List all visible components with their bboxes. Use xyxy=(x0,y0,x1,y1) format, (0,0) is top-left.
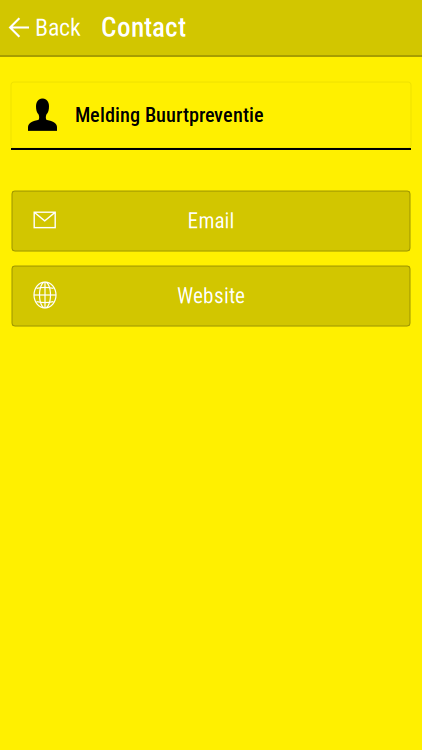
button[interactable]: Back xyxy=(0,0,81,55)
staticText: Website xyxy=(177,283,245,308)
button[interactable]: Melding Buurtpreventie xyxy=(11,82,411,150)
staticText: Email xyxy=(187,208,234,233)
staticText: Back xyxy=(35,13,81,41)
staticText: Melding Buurtpreventie xyxy=(75,103,264,127)
staticText: Contact xyxy=(101,11,186,43)
button[interactable]: Website xyxy=(12,266,410,326)
button[interactable]: Email xyxy=(12,191,410,251)
